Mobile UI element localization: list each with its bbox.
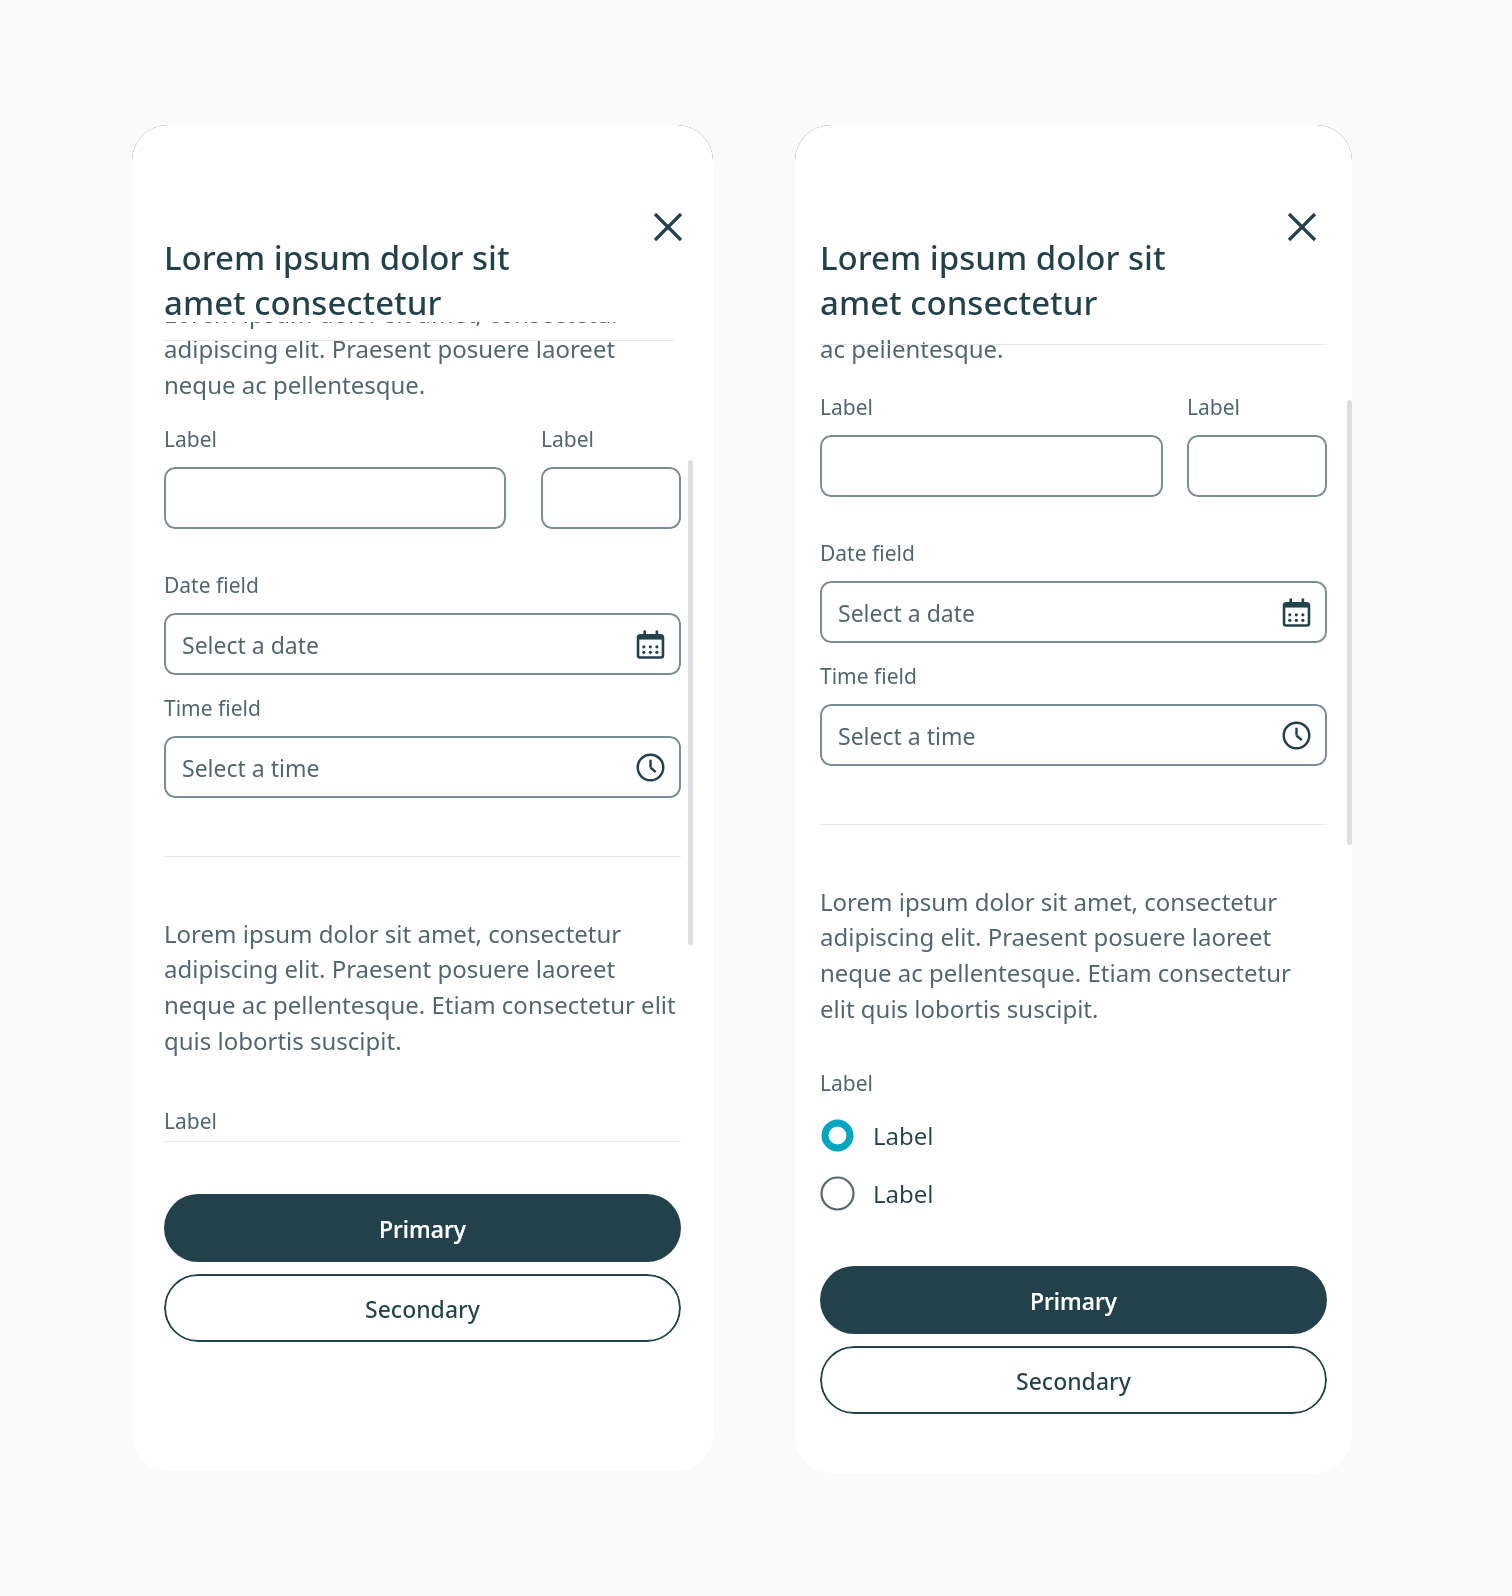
button[interactable]: [164, 467, 506, 529]
button[interactable]: Select a time: [820, 704, 1327, 766]
staticText: Label: [541, 425, 594, 454]
staticText: Date field: [164, 571, 259, 600]
button[interactable]: Label: [820, 1110, 1327, 1160]
staticText: Time field: [820, 662, 917, 691]
staticText: Select a time: [182, 752, 636, 783]
staticText: Lorem ipsum dolor sit amet consectetur: [820, 235, 1240, 324]
staticText: Lorem ipsum dolor sit amet consectetur: [164, 235, 584, 324]
other: Open date picker: [636, 630, 665, 659]
staticText: Label: [873, 1119, 934, 1152]
other: Open date picker: [1282, 598, 1311, 627]
staticText: Label: [820, 1069, 873, 1098]
button[interactable]: [820, 435, 1163, 497]
staticText: Select a date: [838, 597, 1282, 628]
staticText: Lorem ipsum dolor sit amet, consectetur …: [164, 917, 681, 1057]
other: Open time picker: [1282, 721, 1311, 750]
staticText: Select a time: [838, 720, 1282, 751]
staticText: Time field: [164, 694, 261, 723]
staticText: Label: [820, 393, 873, 422]
button[interactable]: Close: [644, 203, 692, 251]
staticText: Secondary: [1016, 1365, 1131, 1396]
button[interactable]: Select a date: [164, 613, 681, 675]
staticText: Primary: [379, 1213, 466, 1244]
button[interactable]: Close: [1278, 203, 1326, 251]
staticText: ac pellentesque.: [820, 332, 1004, 365]
button[interactable]: Select a date: [820, 581, 1327, 643]
staticText: Primary: [1030, 1285, 1117, 1316]
button[interactable]: Secondary: [164, 1274, 681, 1342]
button[interactable]: Select a time: [164, 736, 681, 798]
staticText: Lorem ipsum dolor sit amet, consectetur …: [164, 297, 674, 401]
button[interactable]: Primary: [820, 1266, 1327, 1334]
staticText: Lorem ipsum dolor sit amet, consectetur …: [820, 885, 1327, 1025]
other: Open time picker: [636, 753, 665, 782]
button[interactable]: Label: [164, 1107, 681, 1142]
staticText: Label: [164, 425, 217, 454]
staticText: Label: [164, 1107, 217, 1136]
staticText: Secondary: [365, 1293, 480, 1324]
staticText: Label: [1187, 393, 1240, 422]
button[interactable]: Secondary: [820, 1346, 1327, 1414]
button[interactable]: [541, 467, 681, 529]
button[interactable]: [1187, 435, 1327, 497]
staticText: Date field: [820, 539, 915, 568]
button[interactable]: Primary: [164, 1194, 681, 1262]
button[interactable]: Label: [820, 1168, 1327, 1218]
staticText: Select a date: [182, 629, 636, 660]
staticText: Label: [873, 1177, 934, 1210]
